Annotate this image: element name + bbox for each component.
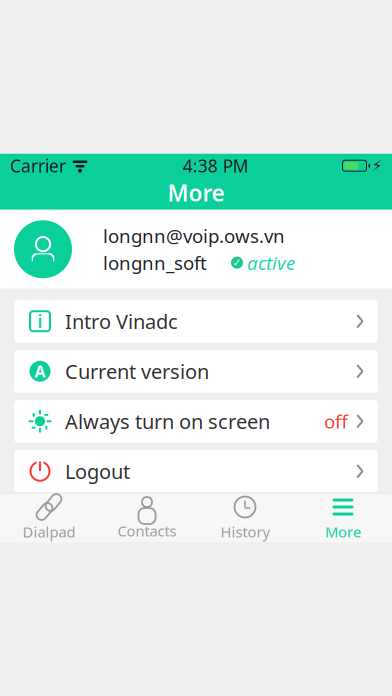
staticText: More: [325, 522, 361, 541]
staticText: Logout: [65, 458, 130, 485]
staticText: Intro Vinadc: [65, 308, 178, 335]
staticText: More: [167, 178, 224, 208]
staticText: History: [220, 522, 269, 541]
staticText: 4:38 PM: [183, 154, 249, 177]
staticText: Dialpad: [22, 522, 75, 541]
button[interactable]: Logout: [14, 450, 378, 493]
button[interactable]: A: [14, 350, 378, 393]
button[interactable]: History: [196, 494, 294, 542]
staticText: A: [34, 361, 45, 382]
staticText: Current version: [65, 358, 209, 385]
staticText: Carrier: [10, 154, 66, 177]
button[interactable]: More: [294, 494, 392, 542]
staticText: Always turn on screen: [65, 408, 270, 435]
button[interactable]: i: [14, 300, 378, 343]
staticText: off: [324, 409, 348, 434]
staticText: active: [247, 250, 295, 275]
button[interactable]: Dialpad: [0, 494, 98, 542]
staticText: i: [37, 310, 42, 333]
button[interactable]: Always turn on screen: [14, 400, 378, 443]
staticText: longnn@voip.ows.vn: [103, 223, 285, 248]
staticText: Contacts: [117, 521, 176, 540]
button[interactable]: Contacts: [98, 494, 196, 542]
staticText: longnn_soft: [103, 250, 207, 275]
staticText: ⚡︎: [372, 157, 382, 174]
staticText: ✓: [232, 257, 241, 269]
